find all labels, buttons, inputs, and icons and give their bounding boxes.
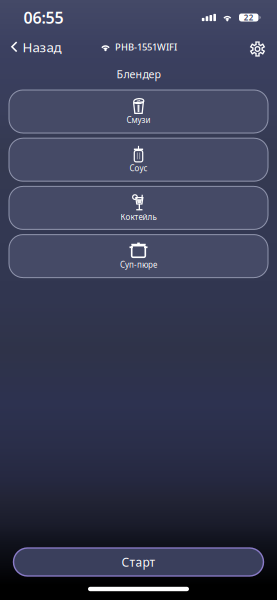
- button[interactable]: Settings: [246, 37, 269, 61]
- staticText: Блендер: [116, 67, 160, 81]
- staticText: 22: [244, 12, 254, 23]
- staticText: PHB-1551WIFI: [115, 41, 177, 53]
- button[interactable]: Соус: [9, 138, 268, 181]
- staticText: Смузи: [126, 115, 150, 125]
- button[interactable]: Смузи: [9, 90, 268, 133]
- staticText: 06:55: [23, 7, 63, 28]
- button[interactable]: Назад: [4, 33, 67, 61]
- staticText: Соус: [129, 163, 147, 173]
- staticText: Суп-пюре: [120, 259, 157, 270]
- button[interactable]: Суп-пюре: [9, 235, 268, 278]
- staticText: Старт: [121, 554, 155, 570]
- staticText: Коктейль: [120, 212, 156, 222]
- button[interactable]: Старт: [13, 548, 263, 576]
- staticText: Назад: [22, 38, 61, 56]
- button[interactable]: Коктейль: [9, 186, 268, 229]
